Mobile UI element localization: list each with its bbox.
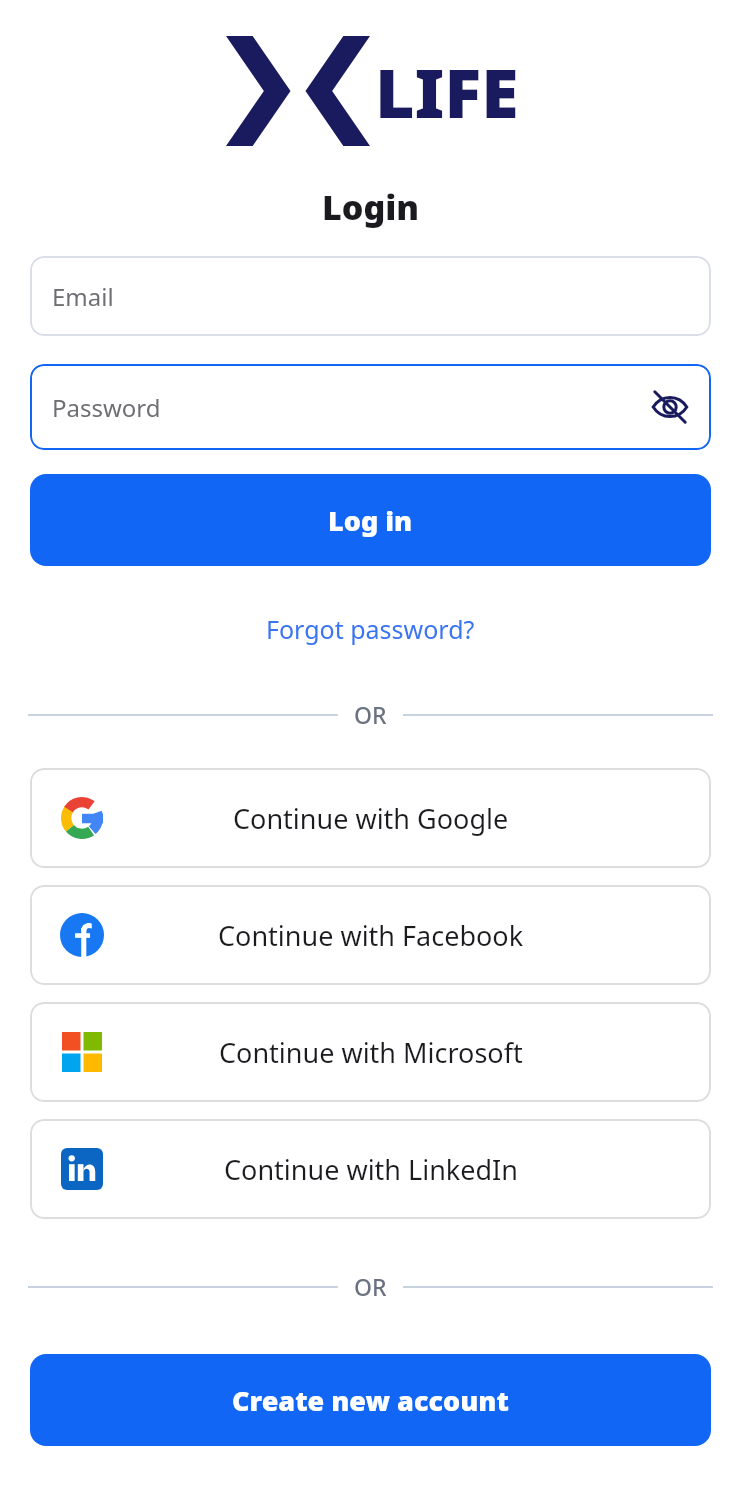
- button[interactable]: Continue with LinkedIn: [30, 1119, 711, 1219]
- button[interactable]: Email: [30, 256, 711, 336]
- staticText: Create new account: [232, 1382, 509, 1419]
- staticText: Email: [52, 280, 114, 313]
- button[interactable]: Continue with Facebook: [30, 885, 711, 985]
- staticText: OR: [354, 1271, 387, 1302]
- staticText: LIFE: [375, 45, 519, 138]
- staticText: Login: [0, 184, 741, 230]
- staticText: OR: [354, 699, 387, 730]
- staticText: Continue with Google: [233, 800, 509, 837]
- staticText: Log in: [328, 502, 413, 539]
- staticText: Continue with Microsoft: [219, 1034, 523, 1071]
- button[interactable]: Log in: [30, 474, 711, 566]
- staticText: Continue with LinkedIn: [224, 1151, 518, 1188]
- button[interactable]: Create new account: [30, 1354, 711, 1446]
- button[interactable]: Continue with Microsoft: [30, 1002, 711, 1102]
- staticText: Password: [52, 391, 161, 424]
- button[interactable]: Password: [30, 364, 711, 450]
- staticText: Continue with Facebook: [218, 917, 524, 954]
- button[interactable]: Continue with Google: [30, 768, 711, 868]
- staticText: Forgot password?: [266, 612, 475, 646]
- button[interactable]: Show password: [647, 384, 693, 430]
- button[interactable]: Forgot password?: [0, 606, 741, 652]
